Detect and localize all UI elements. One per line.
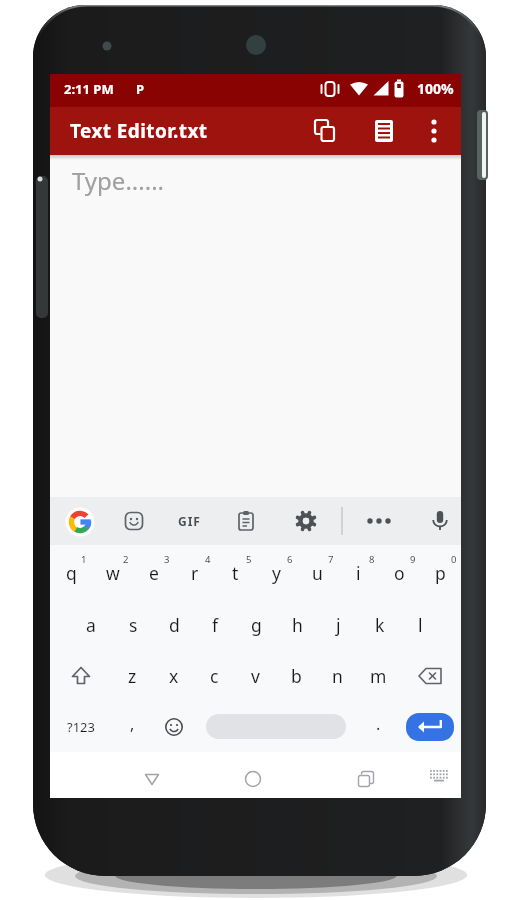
staticText: s xyxy=(129,613,138,637)
button[interactable] xyxy=(122,509,146,533)
button[interactable]: g xyxy=(236,599,277,651)
button[interactable]: . xyxy=(358,701,399,752)
staticText: n xyxy=(332,664,343,688)
button[interactable]: j xyxy=(318,599,359,651)
button[interactable]: n xyxy=(317,651,358,701)
button[interactable] xyxy=(294,509,318,533)
staticText: 7 xyxy=(328,553,334,566)
staticText: f xyxy=(212,613,219,637)
staticText: o xyxy=(394,561,405,585)
staticText: 0 xyxy=(451,553,457,566)
staticText: x xyxy=(169,664,179,688)
button[interactable] xyxy=(234,509,258,533)
button[interactable]: r xyxy=(174,545,215,599)
staticText: , xyxy=(130,713,135,735)
button[interactable] xyxy=(399,651,461,701)
button[interactable] xyxy=(153,701,194,752)
staticText: Type...... xyxy=(72,164,164,197)
button[interactable]: Type...... xyxy=(50,155,461,497)
staticText: b xyxy=(291,664,302,688)
button[interactable]: z xyxy=(112,651,153,701)
button[interactable]: x xyxy=(153,651,194,701)
button[interactable]: ?123 xyxy=(50,701,112,752)
staticText: z xyxy=(128,664,137,688)
button[interactable]: m xyxy=(358,651,399,701)
button[interactable]: e xyxy=(133,545,174,599)
button[interactable]: f xyxy=(195,599,236,651)
staticText: d xyxy=(169,613,180,637)
button[interactable]: o xyxy=(379,545,420,599)
button[interactable] xyxy=(428,768,450,784)
staticText: 3 xyxy=(164,553,170,566)
staticText: 8 xyxy=(369,553,375,566)
staticText: 1 xyxy=(81,553,87,566)
staticText: Text Editor.txt xyxy=(70,118,208,144)
staticText: j xyxy=(336,613,341,637)
button[interactable]: w xyxy=(92,545,133,599)
staticText: ?123 xyxy=(67,718,95,736)
staticText: g xyxy=(251,613,262,637)
button[interactable]: l xyxy=(400,599,441,651)
button[interactable]: q xyxy=(50,545,92,599)
button[interactable] xyxy=(239,765,267,793)
button[interactable] xyxy=(138,765,166,793)
button[interactable]: y xyxy=(256,545,297,599)
staticText: 2:11 PM xyxy=(64,80,114,98)
staticText: v xyxy=(251,664,260,688)
button[interactable]: t xyxy=(215,545,256,599)
staticText: p xyxy=(435,561,446,585)
button[interactable]: u xyxy=(297,545,338,599)
staticText: q xyxy=(66,561,77,585)
button[interactable] xyxy=(428,509,452,533)
staticText: w xyxy=(106,561,120,585)
button[interactable]: a xyxy=(70,599,112,651)
staticText: k xyxy=(375,613,385,637)
staticText: 6 xyxy=(287,553,293,566)
staticText: a xyxy=(86,613,96,637)
staticText: c xyxy=(210,664,219,688)
staticText: 9 xyxy=(410,553,416,566)
staticText: e xyxy=(149,561,159,585)
staticText: 5 xyxy=(246,553,252,566)
button[interactable] xyxy=(194,701,358,752)
staticText: y xyxy=(272,561,281,585)
button[interactable] xyxy=(313,119,337,143)
button[interactable] xyxy=(429,119,439,143)
staticText: i xyxy=(356,561,361,585)
staticText: l xyxy=(418,613,423,637)
button[interactable]: , xyxy=(112,701,153,752)
button[interactable]: h xyxy=(277,599,318,651)
staticText: 4 xyxy=(205,553,211,566)
staticText: m xyxy=(370,664,387,688)
staticText: . xyxy=(376,713,381,735)
button[interactable]: b xyxy=(276,651,317,701)
button[interactable]: k xyxy=(359,599,400,651)
button[interactable] xyxy=(65,507,95,537)
button[interactable]: v xyxy=(235,651,276,701)
staticText: t xyxy=(232,561,239,585)
button[interactable] xyxy=(399,701,461,752)
button[interactable]: d xyxy=(154,599,195,651)
button[interactable] xyxy=(367,509,391,533)
staticText: 2 xyxy=(123,553,129,566)
button[interactable]: s xyxy=(112,599,154,651)
staticText: h xyxy=(292,613,303,637)
button[interactable]: GIF xyxy=(178,513,201,529)
button[interactable] xyxy=(352,765,380,793)
staticText: 100% xyxy=(417,79,454,98)
button[interactable]: c xyxy=(194,651,235,701)
staticText: u xyxy=(312,561,323,585)
button[interactable] xyxy=(50,651,112,701)
button[interactable]: i xyxy=(338,545,379,599)
button[interactable]: p xyxy=(420,545,461,599)
staticText: P xyxy=(136,80,145,98)
button[interactable] xyxy=(372,119,396,143)
staticText: r xyxy=(191,561,199,585)
